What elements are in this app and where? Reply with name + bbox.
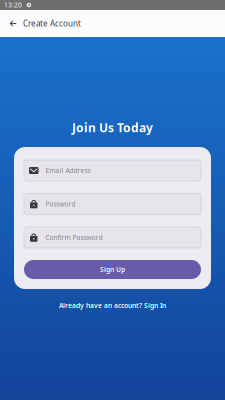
staticText: Already have an account? Sign In (59, 301, 166, 310)
staticText: Password (45, 200, 75, 208)
staticText: Join Us Today (72, 119, 153, 135)
staticText: Sign Up (100, 265, 125, 274)
button[interactable]: Password (24, 193, 201, 214)
button[interactable]: Email Address (24, 160, 201, 181)
staticText: Confirm Password (45, 233, 102, 242)
button[interactable]: Confirm Password (24, 227, 201, 248)
staticText: Create Account (23, 18, 81, 29)
staticText: Email Address (45, 166, 90, 175)
button[interactable]: Sign Up (24, 260, 201, 279)
button[interactable]: Back (0, 10, 23, 37)
staticText: 13:20 (4, 1, 22, 9)
button[interactable]: Already have an account? Sign In (59, 301, 166, 310)
